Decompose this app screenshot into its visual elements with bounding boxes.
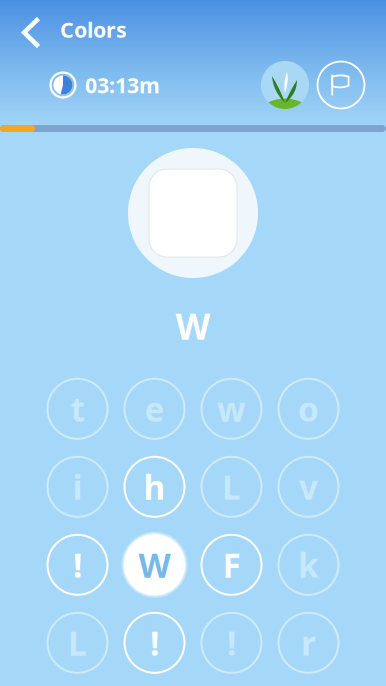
button[interactable]: Back xyxy=(11,5,51,53)
staticText: W xyxy=(175,302,210,350)
button[interactable]: o xyxy=(270,370,347,448)
staticText: F xyxy=(222,543,240,587)
staticText: L xyxy=(68,621,87,665)
staticText: i xyxy=(72,465,82,509)
button[interactable]: t xyxy=(39,370,116,448)
staticText: ! xyxy=(73,543,82,587)
button[interactable]: r xyxy=(270,604,347,682)
button[interactable]: e xyxy=(116,370,193,448)
button[interactable]: Report xyxy=(317,61,365,109)
staticText: L xyxy=(222,465,241,509)
staticText: t xyxy=(70,387,84,431)
staticText: Colors xyxy=(60,15,127,44)
button[interactable]: i xyxy=(39,448,116,526)
button[interactable]: w xyxy=(193,370,270,448)
button[interactable]: L xyxy=(39,604,116,682)
staticText: h xyxy=(143,465,165,509)
staticText: W xyxy=(138,543,170,587)
button[interactable]: h xyxy=(116,448,193,526)
button[interactable]: F xyxy=(193,526,270,604)
staticText: k xyxy=(298,543,319,587)
staticText: ! xyxy=(150,621,159,665)
staticText: ! xyxy=(227,621,236,665)
button[interactable]: Plant xyxy=(261,61,309,109)
staticText: r xyxy=(301,621,316,665)
button[interactable]: k xyxy=(270,526,347,604)
staticText: w xyxy=(217,387,246,431)
button[interactable]: ! xyxy=(193,604,270,682)
staticText: 03:13m xyxy=(85,71,160,99)
staticText: e xyxy=(144,387,164,431)
button[interactable]: L xyxy=(193,448,270,526)
staticText: v xyxy=(299,465,318,509)
button[interactable]: ! xyxy=(39,526,116,604)
button[interactable]: v xyxy=(270,448,347,526)
staticText: o xyxy=(298,387,319,431)
button[interactable]: ! xyxy=(116,604,193,682)
button[interactable]: W xyxy=(116,526,193,604)
